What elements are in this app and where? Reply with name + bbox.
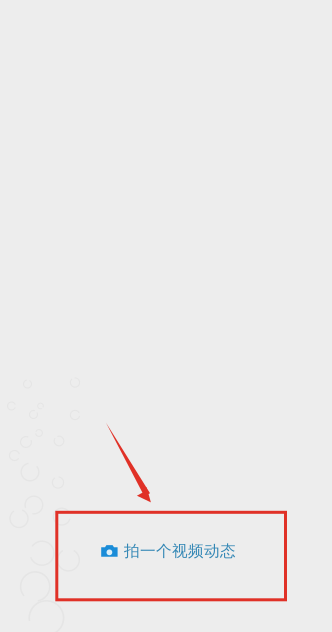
staticText: 拍一个视频动态 <box>124 541 236 561</box>
button[interactable]: 拍一个视频动态 <box>54 507 283 595</box>
